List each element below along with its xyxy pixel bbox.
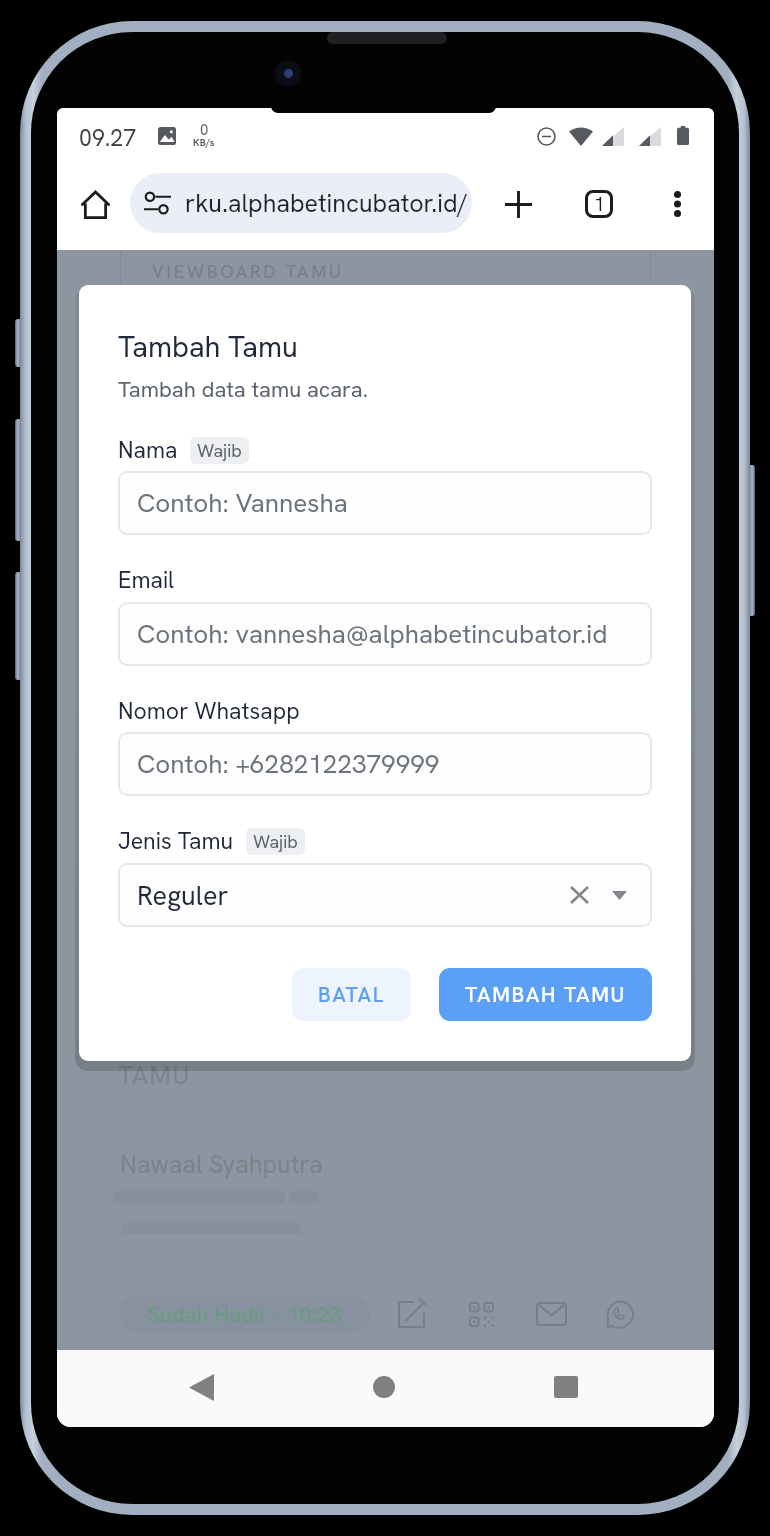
button[interactable]: WhatsApp <box>597 1291 643 1337</box>
staticText: Sudah Hadir - 10:23 <box>147 1300 342 1329</box>
button[interactable]: BATAL <box>292 968 411 1021</box>
staticText: Wajib <box>253 830 298 853</box>
staticText: VIEWBOARD TAMU <box>152 260 344 283</box>
staticText: BATAL <box>318 981 385 1008</box>
staticText: Tambah Tamu <box>118 328 298 366</box>
staticText: Tambah data tamu acara. <box>118 375 368 404</box>
staticText: rku.alphabetincubator.id/ <box>185 187 469 220</box>
button[interactable]: Edit <box>388 1291 434 1337</box>
staticText: TAMU <box>118 1058 191 1092</box>
button[interactable]: QR code <box>458 1291 504 1337</box>
other: Clear <box>571 887 588 903</box>
staticText: 0 <box>200 120 209 140</box>
button[interactable]: Back <box>173 1359 229 1415</box>
staticText: Jenis Tamu <box>118 826 234 856</box>
button[interactable]: Contoh: vannesha@alphabetincubator.id <box>118 602 652 666</box>
button[interactable]: Reguler <box>118 863 652 927</box>
staticText: TAMBAH TAMU <box>465 981 626 1008</box>
staticText: KB/s <box>193 136 215 149</box>
button[interactable]: Tabs <box>573 178 625 230</box>
button[interactable]: New tab <box>492 178 544 230</box>
staticText: 1 <box>594 192 605 217</box>
other: Open dropdown <box>612 891 627 900</box>
staticText: Email <box>118 565 175 595</box>
button[interactable]: Recent apps <box>538 1359 594 1415</box>
button[interactable]: Home <box>356 1359 412 1415</box>
staticText: Contoh: vannesha@alphabetincubator.id <box>137 617 608 651</box>
staticText: Contoh: +6282122379999 <box>137 747 440 781</box>
staticText: 09.27 <box>79 123 137 153</box>
staticText: Wajib <box>197 439 242 462</box>
button[interactable]: TAMBAH TAMU <box>439 968 652 1021</box>
button[interactable]: rku.alphabetincubator.id/ <box>130 173 472 233</box>
button[interactable]: Sudah Hadir - 10:23 <box>119 1295 370 1333</box>
button[interactable]: Contoh: Vannesha <box>118 471 652 535</box>
staticText: Nawaal Syahputra <box>120 1148 323 1181</box>
staticText: Reguler <box>137 878 229 913</box>
button[interactable]: Contoh: +6282122379999 <box>118 732 652 796</box>
button[interactable]: Email <box>528 1291 574 1337</box>
staticText: Nomor Whatsapp <box>118 696 300 726</box>
staticText: Contoh: Vannesha <box>137 486 348 520</box>
staticText: Nama <box>118 435 178 465</box>
button[interactable]: More options <box>651 178 703 230</box>
button[interactable]: Home <box>69 178 121 230</box>
